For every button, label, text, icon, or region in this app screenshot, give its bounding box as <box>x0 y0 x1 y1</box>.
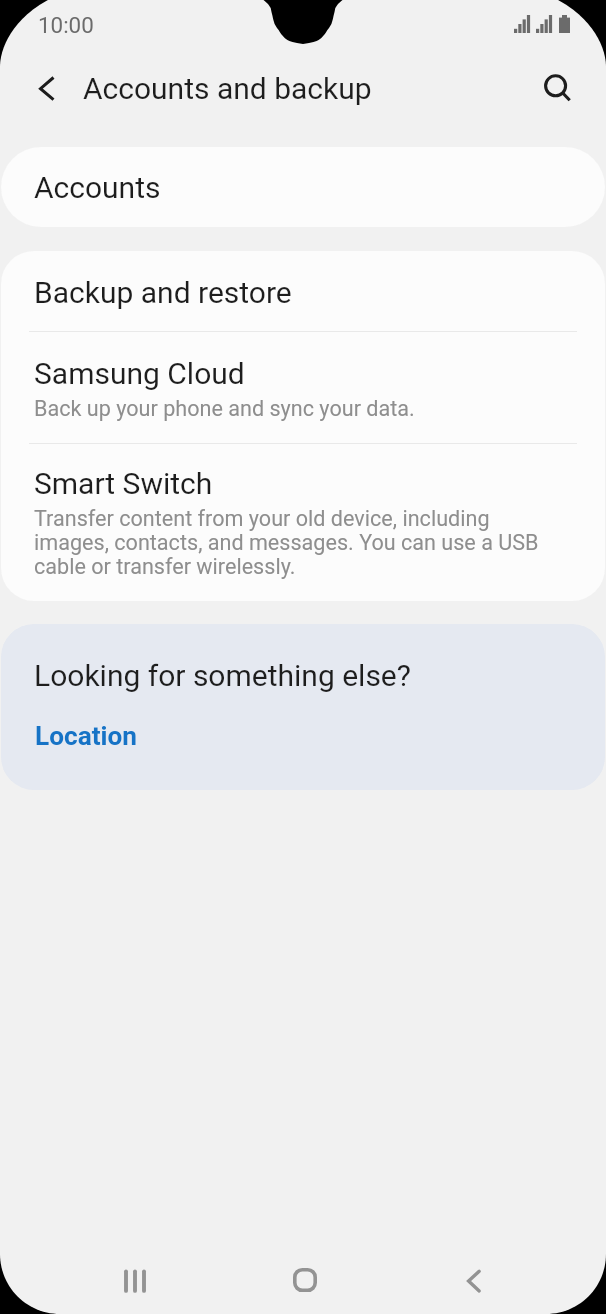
staticText: Transfer content from your old device, i… <box>34 506 559 580</box>
button[interactable]: Samsung Cloud <box>1 332 605 443</box>
button[interactable]: Accounts <box>1 147 605 227</box>
button[interactable]: Home <box>276 1260 334 1304</box>
button[interactable]: Smart Switch <box>1 444 605 601</box>
button[interactable]: Location <box>23 716 149 757</box>
staticText: Backup and restore <box>34 275 292 310</box>
staticText: Back up your phone and sync your data. <box>34 396 415 421</box>
staticText: Accounts and backup <box>83 71 372 106</box>
staticText: Samsung Cloud <box>34 356 245 391</box>
button[interactable]: Recents <box>106 1260 164 1304</box>
staticText: Looking for something else? <box>34 658 411 693</box>
staticText: 10:00 <box>38 12 94 38</box>
button[interactable]: Back <box>446 1260 504 1304</box>
staticText: Smart Switch <box>34 466 213 501</box>
staticText: Location <box>35 721 137 752</box>
staticText: Accounts <box>34 170 161 205</box>
button[interactable]: Navigate up <box>23 64 69 110</box>
button[interactable]: Search <box>534 63 580 109</box>
button[interactable]: Backup and restore <box>1 251 605 331</box>
